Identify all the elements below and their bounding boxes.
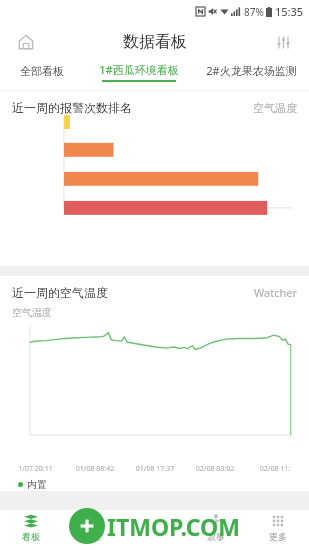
button[interactable]: 2#火龙果农场监测 — [194, 63, 309, 81]
button[interactable]: Add — [69, 508, 105, 544]
button[interactable]: 农事 — [185, 510, 247, 542]
staticText: 监控 — [83, 531, 101, 542]
button[interactable]: 1#西瓜环境看板 — [83, 62, 194, 82]
staticText: 全部看板 — [20, 64, 64, 78]
staticText: 看板 — [22, 531, 40, 542]
staticText: 2#火龙果农场监测 — [206, 63, 297, 78]
staticText: 1/07 20:11 — [6, 464, 65, 474]
staticText: 01/08 17:37 — [125, 464, 185, 474]
staticText: 数据看板 — [123, 32, 187, 52]
staticText: 1#西瓜环境看板 — [99, 62, 179, 77]
staticText: 02/08 11: — [245, 464, 305, 474]
button[interactable]: 更多 — [247, 510, 309, 542]
staticText: Watcher — [254, 285, 297, 300]
staticText: 农事 — [207, 531, 225, 542]
staticText: 空气温度 — [12, 306, 52, 319]
staticText: 内置 — [27, 478, 47, 491]
staticText: 空气温度 — [253, 101, 297, 115]
staticText: 15:35 — [275, 4, 304, 19]
staticText: 01/08 08:42 — [65, 464, 125, 474]
staticText: 更多 — [269, 531, 287, 542]
staticText: 02/08 03:02 — [185, 464, 245, 474]
button[interactable]: Home — [12, 28, 40, 56]
staticText: ITMOP.COM — [107, 511, 240, 542]
button[interactable]: Filter — [269, 28, 297, 56]
button[interactable]: 全部看板 — [0, 64, 83, 81]
staticText: 87% — [244, 5, 264, 19]
button[interactable]: 看板 — [0, 510, 61, 542]
button[interactable]: 监控 — [61, 510, 123, 542]
staticText: 近一周的空气温度 — [12, 285, 108, 300]
staticText: 近一周的报警次数排名 — [12, 100, 132, 115]
